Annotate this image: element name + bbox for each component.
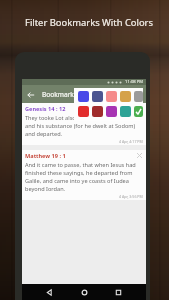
button[interactable]: Select colour: [134, 106, 143, 117]
button[interactable]: Select colour: [106, 91, 117, 102]
button[interactable]: Matthew 19 : 1: [22, 150, 146, 200]
staticText: And it came to passe, that when Iesus ha…: [25, 161, 143, 193]
staticText: 4 Apr, 4:17 PM: [119, 139, 143, 144]
staticText: They tooke Lot also Abrams brothers sonn…: [25, 114, 143, 138]
button[interactable]: Select colour: [134, 91, 143, 102]
button[interactable]: Select colour: [92, 106, 103, 117]
button[interactable]: Genesis 14 : 12: [22, 103, 146, 145]
button[interactable]: Select colour: [120, 106, 131, 117]
staticText: 4 Apr, 3:56 PM: [119, 194, 143, 199]
staticText: Filter Bookmarks With Colors: [25, 16, 153, 29]
staticText: Genesis 14 : 12: [25, 105, 66, 113]
button[interactable]: Back: [22, 86, 39, 103]
button[interactable]: Select colour: [106, 106, 117, 117]
button[interactable]: Select colour: [92, 91, 103, 102]
button[interactable]: Select colour: [120, 91, 131, 102]
staticText: Matthew 19 : 1: [25, 152, 66, 160]
button[interactable]: Select colour: [78, 106, 89, 117]
staticText: 11:08 PM: [125, 79, 144, 85]
button[interactable]: Recents: [112, 286, 125, 299]
button[interactable]: Home: [78, 286, 91, 299]
button[interactable]: Select colour: [78, 91, 89, 102]
button[interactable]: Back: [43, 286, 56, 299]
staticText: Bookmarks: [42, 90, 78, 99]
button[interactable]: Remove bookmark: [136, 152, 143, 159]
button[interactable]: Remove bookmark: [136, 105, 143, 112]
